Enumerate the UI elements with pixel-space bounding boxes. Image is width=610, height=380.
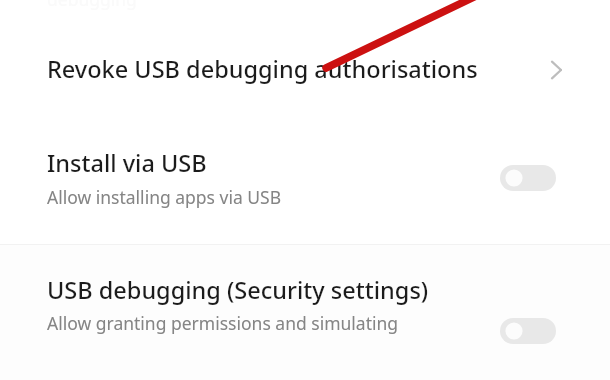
button[interactable]: Revoke USB debugging authorisations [0,38,610,100]
staticText: Allow granting permissions and simulatin… [47,311,399,335]
button[interactable]: Install via USB toggle [500,165,556,191]
button[interactable]: USB debugging (Security settings) [0,245,610,380]
staticText: Revoke USB debugging authorisations [47,53,478,85]
button[interactable]: USB debugging toggle [500,318,556,344]
button[interactable]: Install via USB [0,138,610,228]
staticText: USB debugging (Security settings) [47,274,429,306]
staticText: Install via USB [47,147,207,179]
staticText: Allow installing apps via USB [47,185,282,209]
